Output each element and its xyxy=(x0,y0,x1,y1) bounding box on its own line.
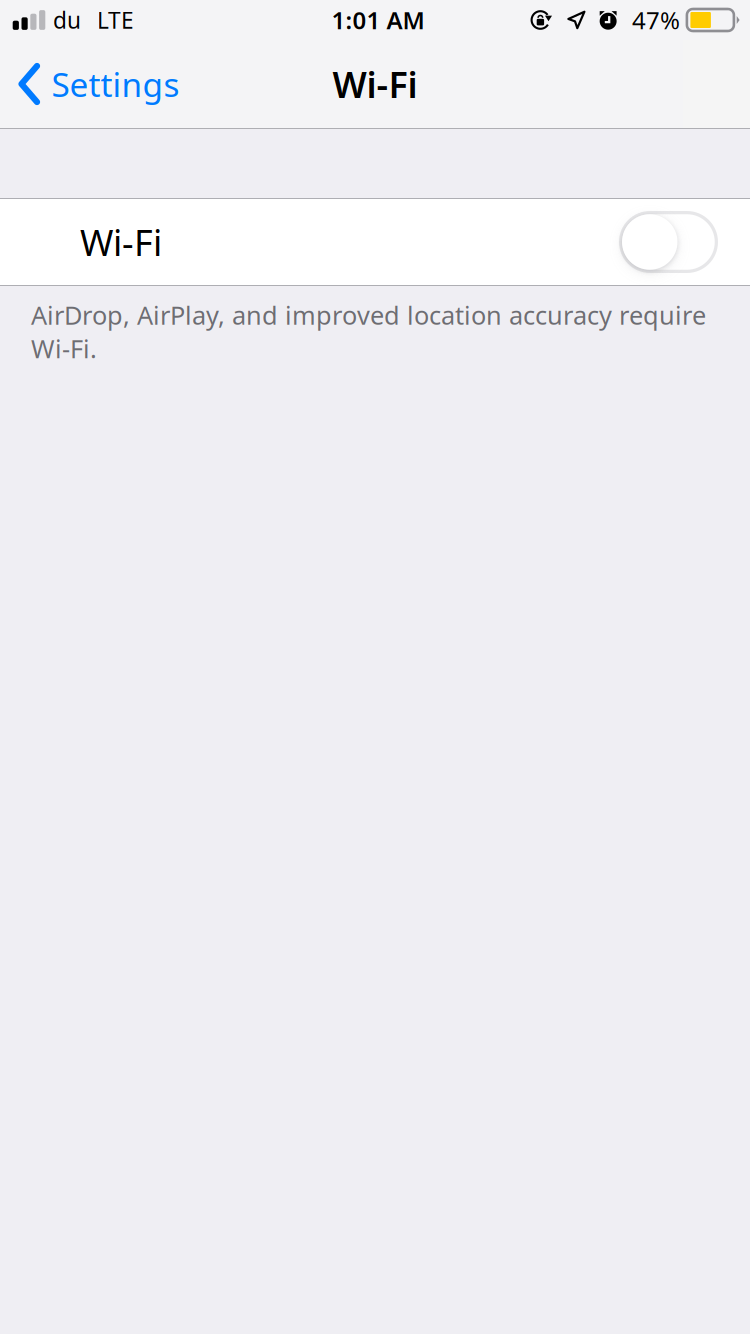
staticText: Wi-Fi xyxy=(332,60,417,108)
staticText: AirDrop, AirPlay, and improved location … xyxy=(31,298,706,365)
staticText: du xyxy=(53,5,81,35)
button[interactable]: Wi-Fi xyxy=(619,211,718,273)
staticText: Wi-Fi xyxy=(80,218,162,266)
staticText: 1:01 AM xyxy=(331,4,424,36)
button[interactable]: Settings xyxy=(0,51,193,117)
staticText: LTE xyxy=(97,5,134,35)
staticText: 47% xyxy=(632,4,680,36)
staticText: Settings xyxy=(51,62,179,106)
